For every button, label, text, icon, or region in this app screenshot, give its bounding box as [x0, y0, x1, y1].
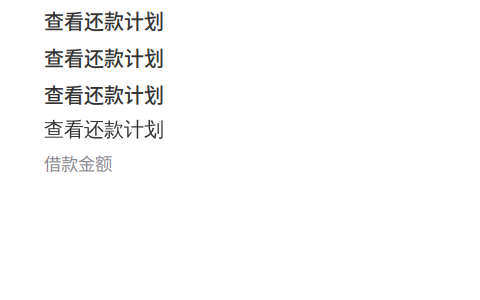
staticText: 查看还款计划	[44, 6, 164, 35]
staticText: 查看还款计划	[44, 80, 164, 109]
staticText: 查看还款计划	[44, 117, 164, 142]
staticText: 查看还款计划	[44, 43, 164, 72]
staticText: 借款金额	[44, 150, 112, 175]
